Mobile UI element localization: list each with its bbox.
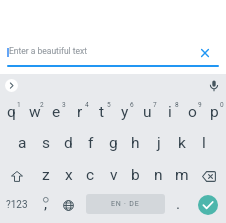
- staticText: g: [109, 134, 118, 152]
- staticText: r: [77, 103, 83, 121]
- button[interactable]: [57, 189, 80, 221]
- button[interactable]: [5, 79, 18, 92]
- button[interactable]: ?123: [0, 189, 34, 221]
- button[interactable]: .: [168, 189, 189, 221]
- staticText: 2: [40, 101, 44, 109]
- staticText: 3: [62, 101, 66, 109]
- button[interactable]: b: [124, 160, 147, 192]
- button[interactable]: t: [90, 96, 113, 128]
- button[interactable]: [192, 160, 226, 192]
- button[interactable]: e: [45, 96, 68, 128]
- button[interactable]: m: [170, 160, 193, 192]
- staticText: z: [42, 166, 50, 184]
- staticText: .: [176, 195, 181, 213]
- staticText: 7: [153, 101, 157, 109]
- button[interactable]: y: [113, 96, 136, 128]
- staticText: e: [52, 103, 61, 121]
- staticText: v: [110, 166, 118, 184]
- button[interactable]: EN · DE: [86, 194, 165, 214]
- staticText: d: [64, 134, 73, 152]
- button[interactable]: a: [11, 128, 34, 160]
- button[interactable]: d: [57, 128, 80, 160]
- button[interactable]: c: [79, 160, 102, 192]
- button[interactable]: [0, 160, 34, 192]
- staticText: u: [143, 103, 152, 121]
- staticText: s: [42, 134, 50, 152]
- staticText: j: [157, 134, 161, 152]
- button[interactable]: x: [57, 160, 80, 192]
- button[interactable]: f: [79, 128, 102, 160]
- staticText: c: [86, 166, 95, 184]
- button[interactable]: j: [147, 128, 170, 160]
- staticText: k: [178, 134, 186, 152]
- staticText: i: [168, 103, 172, 121]
- button[interactable]: q: [0, 96, 23, 128]
- staticText: ?123: [6, 199, 28, 211]
- button[interactable]: s: [34, 128, 57, 160]
- button[interactable]: l: [192, 128, 215, 160]
- staticText: w: [29, 103, 41, 121]
- staticText: 0: [220, 101, 224, 109]
- staticText: 4: [85, 101, 89, 109]
- button[interactable]: u: [136, 96, 159, 128]
- staticText: y: [121, 103, 129, 121]
- staticText: o: [188, 103, 197, 121]
- staticText: q: [7, 103, 16, 121]
- staticText: 1: [17, 101, 21, 109]
- staticText: p: [210, 103, 219, 121]
- staticText: a: [18, 134, 27, 152]
- staticText: t: [99, 103, 105, 121]
- staticText: 8: [175, 101, 179, 109]
- staticText: 5: [107, 101, 111, 109]
- staticText: EN · DE: [111, 200, 140, 208]
- button[interactable]: [209, 80, 219, 92]
- staticText: 6: [130, 101, 134, 109]
- button[interactable]: p: [203, 96, 226, 128]
- button[interactable]: i: [158, 96, 181, 128]
- staticText: Enter a beautiful text: [9, 46, 88, 56]
- button[interactable]: ,: [34, 189, 57, 221]
- staticText: 9: [198, 101, 202, 109]
- staticText: f: [88, 134, 94, 152]
- button[interactable]: n: [147, 160, 170, 192]
- staticText: h: [131, 134, 140, 152]
- staticText: x: [65, 166, 73, 184]
- staticText: m: [175, 166, 189, 184]
- button[interactable]: r: [68, 96, 91, 128]
- staticText: n: [154, 166, 163, 184]
- button[interactable]: g: [102, 128, 125, 160]
- button[interactable]: [198, 195, 218, 215]
- staticText: b: [131, 166, 140, 184]
- staticText: l: [202, 134, 206, 152]
- button[interactable]: o: [181, 96, 204, 128]
- button[interactable]: k: [170, 128, 193, 160]
- staticText: ,: [44, 195, 48, 213]
- button[interactable]: z: [34, 160, 57, 192]
- button[interactable]: h: [124, 128, 147, 160]
- button[interactable]: v: [102, 160, 125, 192]
- button[interactable]: [201, 49, 209, 57]
- button[interactable]: w: [23, 96, 46, 128]
